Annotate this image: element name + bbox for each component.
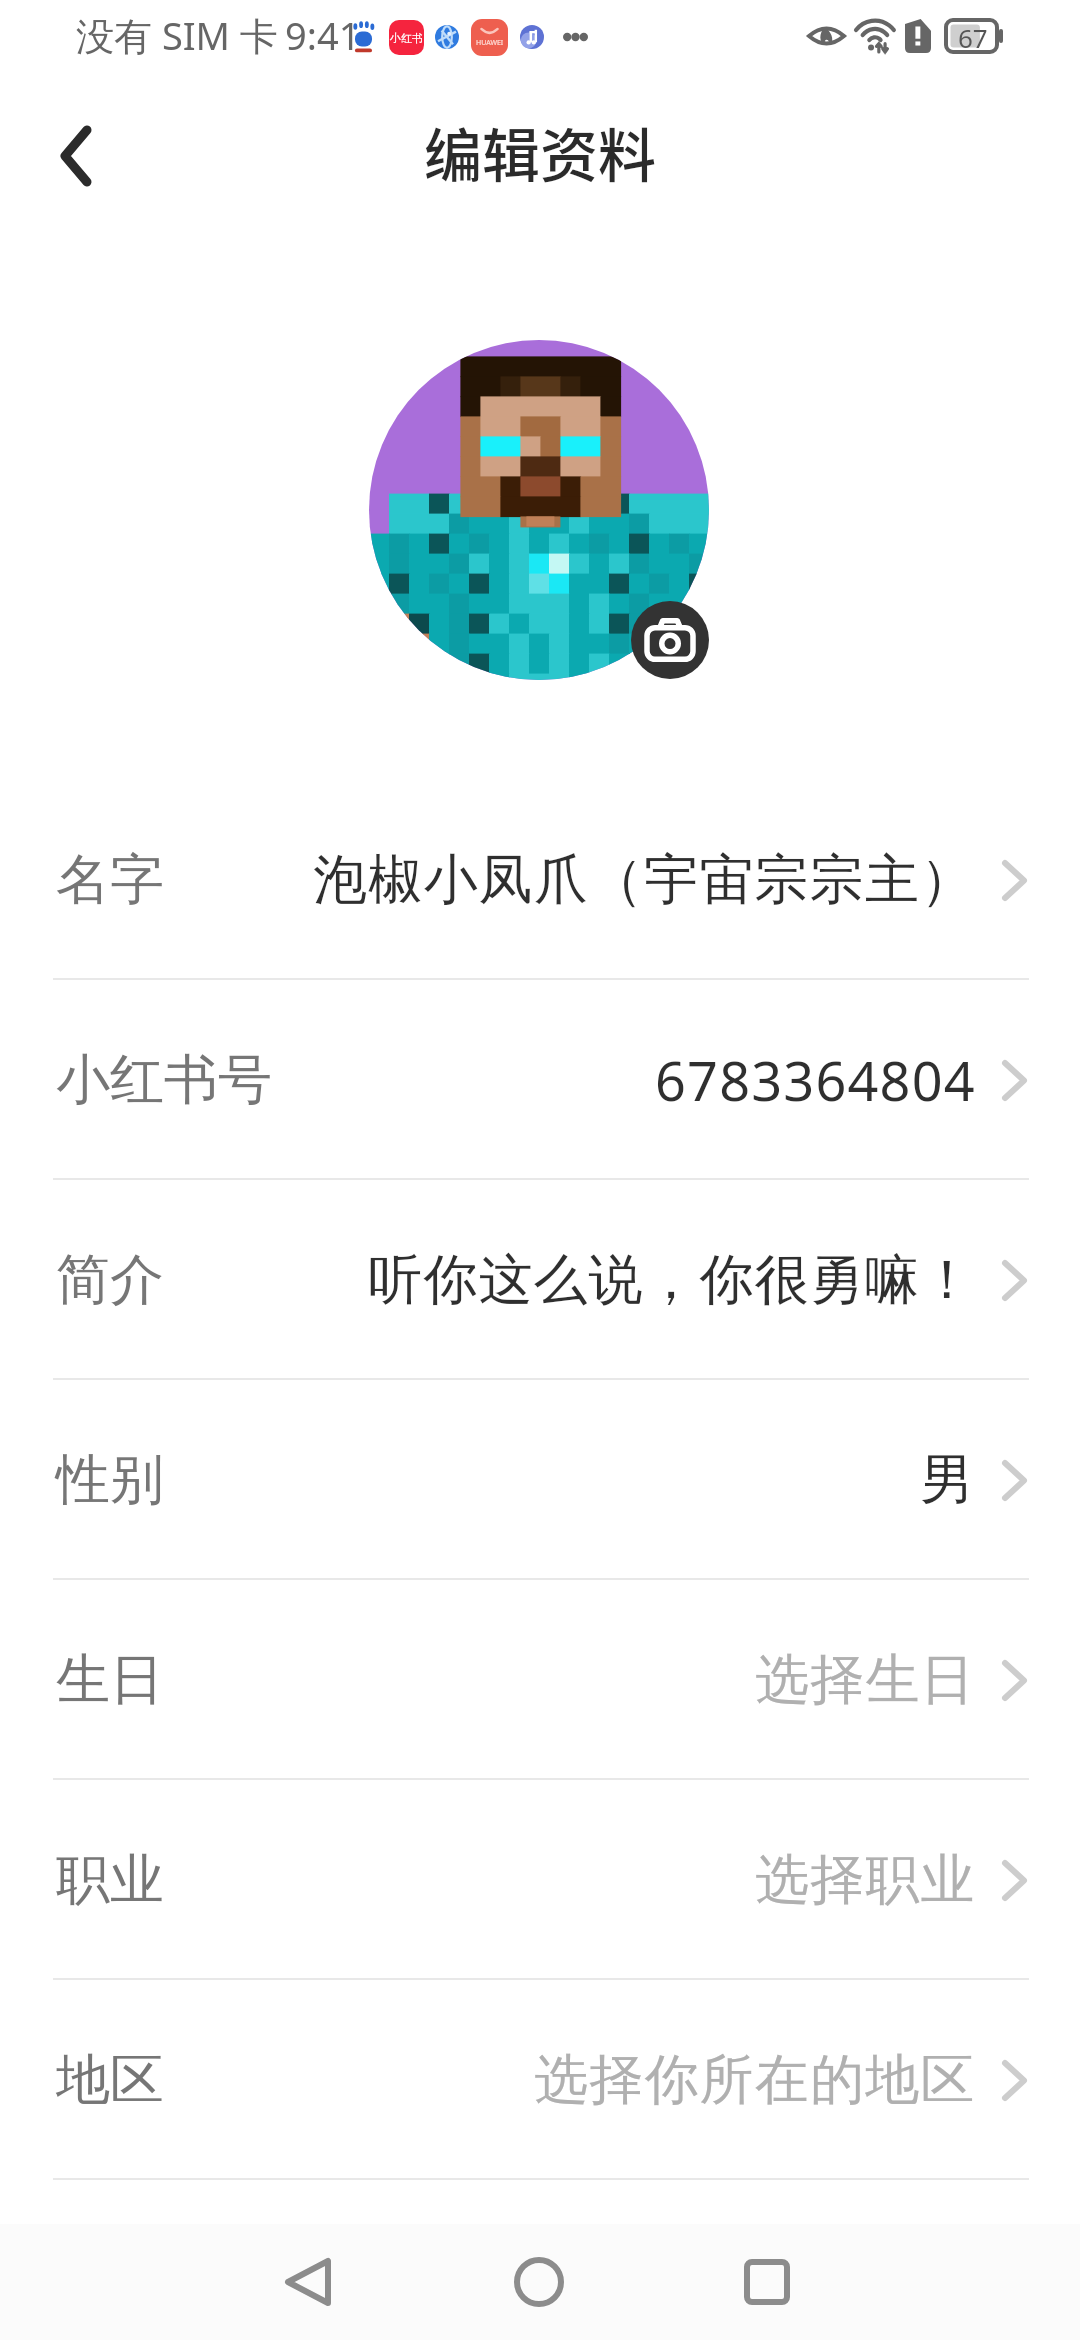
button[interactable]: 地区: [0, 1980, 1080, 2180]
staticText: 职业: [56, 1846, 164, 1914]
staticText: 泡椒小凤爪（宇宙宗宗主）: [313, 846, 976, 914]
button[interactable]: Recent apps: [712, 2227, 822, 2337]
button[interactable]: 名字: [0, 780, 1080, 980]
staticText: 选择职业: [755, 1846, 976, 1914]
staticText: 生日: [56, 1646, 164, 1714]
button[interactable]: 生日: [0, 1580, 1080, 1780]
staticText: 小红书号: [56, 1046, 272, 1114]
button[interactable]: Home: [484, 2227, 594, 2337]
staticText: 简介: [56, 1246, 164, 1314]
staticText: 67: [958, 20, 988, 52]
staticText: 性别: [56, 1446, 164, 1514]
button[interactable]: 性别: [0, 1380, 1080, 1580]
staticText: 听你这么说，你很勇嘛！: [368, 1246, 976, 1314]
staticText: 名字: [56, 846, 164, 914]
button[interactable]: Change profile photo: [631, 601, 709, 679]
button[interactable]: 小红书号: [0, 980, 1080, 1180]
button[interactable]: Back: [16, 96, 136, 216]
staticText: 6783364804: [655, 1043, 976, 1117]
button[interactable]: Back: [253, 2227, 363, 2337]
staticText: 选择你所在的地区: [534, 2046, 976, 2114]
staticText: 男: [920, 1446, 976, 1514]
staticText: HUAWEI: [476, 38, 504, 48]
staticText: 9:41: [285, 9, 361, 61]
button[interactable]: 简介: [0, 1180, 1080, 1380]
button[interactable]: 职业: [0, 1780, 1080, 1980]
staticText: 地区: [56, 2046, 164, 2114]
staticText: 选择生日: [755, 1646, 976, 1714]
staticText: 小红书: [390, 31, 423, 45]
staticText: 编辑资料: [424, 110, 657, 194]
staticText: 没有 SIM 卡: [76, 9, 278, 61]
button[interactable]: Profile photo: [369, 340, 709, 680]
